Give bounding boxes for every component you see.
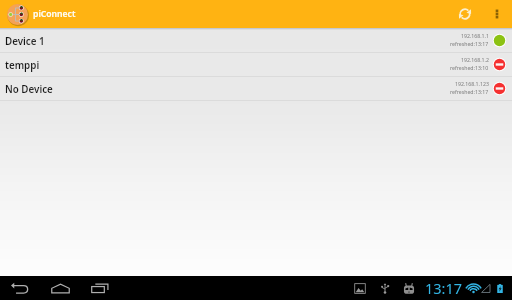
staticText: refreshed:13:17: [450, 40, 489, 47]
button[interactable]: More options: [486, 0, 508, 28]
staticText: No Device: [5, 83, 53, 96]
button[interactable]: Back: [8, 276, 32, 300]
staticText: 192.168.1.123: [455, 80, 489, 87]
button[interactable]: piConnect: [0, 0, 82, 28]
button[interactable]: temppi: [0, 53, 512, 77]
staticText: temppi: [5, 59, 40, 72]
button[interactable]: Recent apps: [88, 276, 112, 300]
staticText: 192.168.1.2: [461, 56, 489, 63]
button[interactable]: No Device: [0, 77, 512, 101]
button[interactable]: Refresh: [452, 0, 478, 28]
staticText: refreshed:13:17: [450, 88, 489, 95]
button[interactable]: Device 1: [0, 29, 512, 53]
staticText: 192.168.1.1: [461, 32, 489, 39]
staticText: Device 1: [5, 35, 45, 48]
staticText: refreshed:13:10: [450, 64, 489, 71]
staticText: piConnect: [33, 8, 76, 20]
staticText: 13:17: [425, 278, 463, 298]
button[interactable]: Home: [48, 276, 72, 300]
